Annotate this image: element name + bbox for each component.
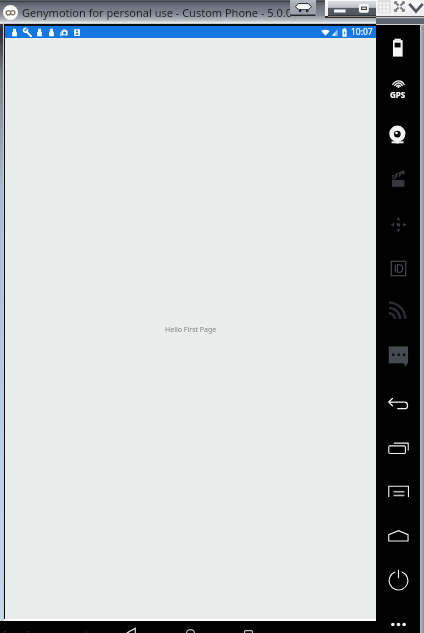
button[interactable]: Menu bbox=[376, 477, 420, 507]
button[interactable]: Accelerometer bbox=[376, 209, 420, 239]
staticText: GPS bbox=[390, 89, 406, 100]
staticText: free for personal use bbox=[2, 627, 110, 633]
button[interactable]: More options bbox=[376, 609, 420, 633]
button[interactable]: Power bbox=[376, 565, 420, 595]
button[interactable]: Back bbox=[122, 621, 140, 633]
button[interactable]: Camera bbox=[376, 120, 420, 150]
button[interactable]: Home bbox=[181, 621, 199, 633]
staticText: 10:07 bbox=[351, 26, 373, 38]
staticText: ... bbox=[317, 5, 326, 19]
staticText: Genymotion for personal use - Custom Pho… bbox=[22, 5, 293, 20]
button[interactable]: Recent apps bbox=[239, 621, 257, 633]
button[interactable]: Maximize window bbox=[352, 1, 376, 17]
button[interactable]: Messages bbox=[376, 340, 420, 370]
button[interactable]: Network bbox=[376, 296, 420, 326]
button[interactable]: Identifiers bbox=[376, 253, 420, 283]
button[interactable]: Record video bbox=[376, 165, 420, 195]
button[interactable]: Home bbox=[376, 520, 420, 550]
button[interactable]: Minimize window bbox=[328, 1, 352, 17]
button[interactable]: Back bbox=[376, 388, 420, 418]
button[interactable]: Recent apps bbox=[376, 433, 420, 463]
button[interactable]: Device settings bbox=[290, 0, 316, 17]
button[interactable]: GPS bbox=[376, 75, 420, 105]
button[interactable]: Battery bbox=[376, 32, 420, 62]
staticText: Hello First Page bbox=[165, 325, 217, 335]
